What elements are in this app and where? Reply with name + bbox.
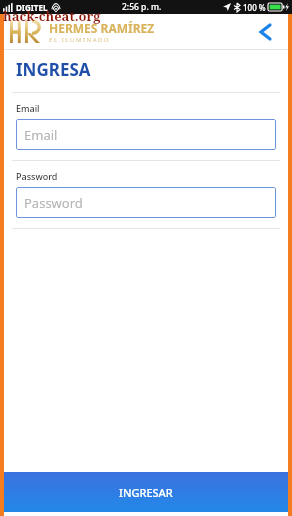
staticText: HERMES RAMÍREZ: [49, 20, 155, 36]
staticText: INGRESAR: [119, 485, 173, 500]
staticText: Email: [16, 102, 40, 114]
button[interactable]: Password: [16, 187, 276, 218]
staticText: INGRESA: [16, 58, 91, 81]
staticText: Email: [24, 126, 58, 144]
staticText: 100 %: [243, 2, 266, 13]
staticText: hack-cheat.org: [3, 7, 101, 25]
button[interactable]: INGRESAR: [4, 472, 288, 512]
staticText: Password: [24, 194, 83, 212]
staticText: Password: [16, 170, 58, 182]
button[interactable]: Back: [252, 19, 278, 45]
button[interactable]: Email: [16, 119, 276, 150]
staticText: 2:56 p. m.: [122, 1, 162, 13]
staticText: E L I L U M I N A D O: [49, 36, 109, 44]
staticText: DIGITEL: [16, 2, 48, 13]
